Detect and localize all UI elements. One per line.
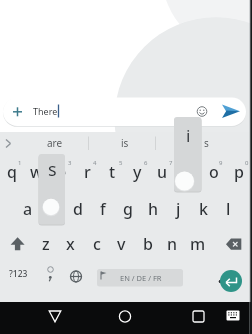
- staticText: z: [42, 233, 50, 255]
- staticText: d: [73, 198, 83, 220]
- button[interactable]: [113, 304, 137, 328]
- staticText: e: [57, 161, 67, 183]
- staticText: There: [33, 105, 58, 117]
- staticText: s: [48, 157, 57, 181]
- button[interactable]: v: [109, 227, 134, 261]
- staticText: o: [209, 161, 219, 183]
- button[interactable]: w: [24, 154, 49, 189]
- staticText: u: [157, 161, 168, 183]
- button[interactable]: [5, 227, 31, 260]
- button[interactable]: [208, 262, 233, 293]
- staticText: 7: [169, 159, 173, 167]
- staticText: p: [234, 161, 244, 183]
- staticText: c: [93, 233, 101, 255]
- button[interactable]: n: [160, 227, 185, 261]
- button[interactable]: [217, 100, 246, 123]
- button[interactable]: u: [150, 154, 175, 189]
- button[interactable]: z: [33, 227, 58, 261]
- button[interactable]: k: [191, 192, 216, 226]
- button[interactable]: f: [90, 192, 115, 226]
- button[interactable]: is: [95, 132, 155, 153]
- button[interactable]: EN / DE / FR: [97, 268, 185, 287]
- button[interactable]: [0, 132, 18, 154]
- button[interactable]: g: [115, 192, 140, 226]
- button[interactable]: [220, 270, 242, 292]
- button[interactable]: l: [216, 192, 241, 226]
- staticText: j: [176, 198, 181, 220]
- button[interactable]: q: [0, 154, 24, 189]
- staticText: f: [100, 198, 106, 220]
- staticText: 0: [245, 159, 249, 167]
- staticText: w: [30, 161, 43, 183]
- button[interactable]: h: [141, 192, 166, 226]
- button[interactable]: m: [185, 227, 210, 261]
- staticText: k: [199, 198, 208, 220]
- staticText: q: [7, 161, 17, 183]
- button[interactable]: a: [15, 192, 40, 226]
- button[interactable]: j: [166, 192, 191, 226]
- button[interactable]: t: [100, 154, 125, 189]
- button[interactable]: ?123: [2, 259, 34, 289]
- staticText: is: [121, 136, 129, 150]
- staticText: 9: [219, 159, 223, 167]
- staticText: v: [117, 233, 126, 255]
- button[interactable]: s: [40, 192, 65, 226]
- staticText: EN / DE / FR: [120, 273, 162, 283]
- button[interactable]: e: [49, 154, 74, 189]
- button[interactable]: b: [135, 227, 160, 261]
- button[interactable]: are: [25, 132, 85, 153]
- staticText: 6: [144, 159, 148, 167]
- staticText: n: [167, 233, 178, 255]
- staticText: m: [190, 233, 206, 255]
- button[interactable]: [97, 266, 183, 288]
- staticText: a: [23, 198, 33, 220]
- staticText: 5: [119, 159, 123, 167]
- button[interactable]: y: [125, 154, 150, 189]
- button[interactable]: [221, 227, 247, 260]
- staticText: s: [204, 136, 209, 150]
- staticText: i: [185, 161, 190, 183]
- button[interactable]: s: [191, 132, 221, 153]
- button[interactable]: o: [201, 154, 226, 189]
- button[interactable]: [43, 304, 67, 328]
- button[interactable]: [63, 260, 89, 293]
- staticText: are: [47, 136, 63, 150]
- staticText: l: [226, 198, 231, 220]
- staticText: t: [109, 161, 116, 183]
- staticText: 4: [93, 159, 97, 167]
- button[interactable]: [221, 304, 245, 328]
- button[interactable]: d: [65, 192, 90, 226]
- staticText: i: [186, 124, 191, 147]
- staticText: b: [143, 233, 153, 255]
- staticText: 1: [18, 159, 22, 167]
- button[interactable]: p: [226, 154, 251, 189]
- button[interactable]: [186, 304, 210, 328]
- button[interactable]: x: [58, 227, 83, 261]
- button[interactable]: [194, 100, 210, 123]
- staticText: g: [123, 198, 133, 220]
- button[interactable]: [38, 260, 64, 293]
- staticText: 3: [68, 159, 72, 167]
- staticText: s: [49, 198, 57, 220]
- staticText: ?123: [9, 268, 28, 280]
- staticText: x: [66, 233, 75, 255]
- button[interactable]: c: [84, 227, 109, 261]
- button[interactable]: r: [75, 154, 100, 189]
- button[interactable]: i: [175, 154, 200, 189]
- staticText: r: [84, 161, 91, 183]
- button[interactable]: [3, 97, 193, 126]
- staticText: h: [148, 198, 159, 220]
- staticText: y: [133, 161, 142, 183]
